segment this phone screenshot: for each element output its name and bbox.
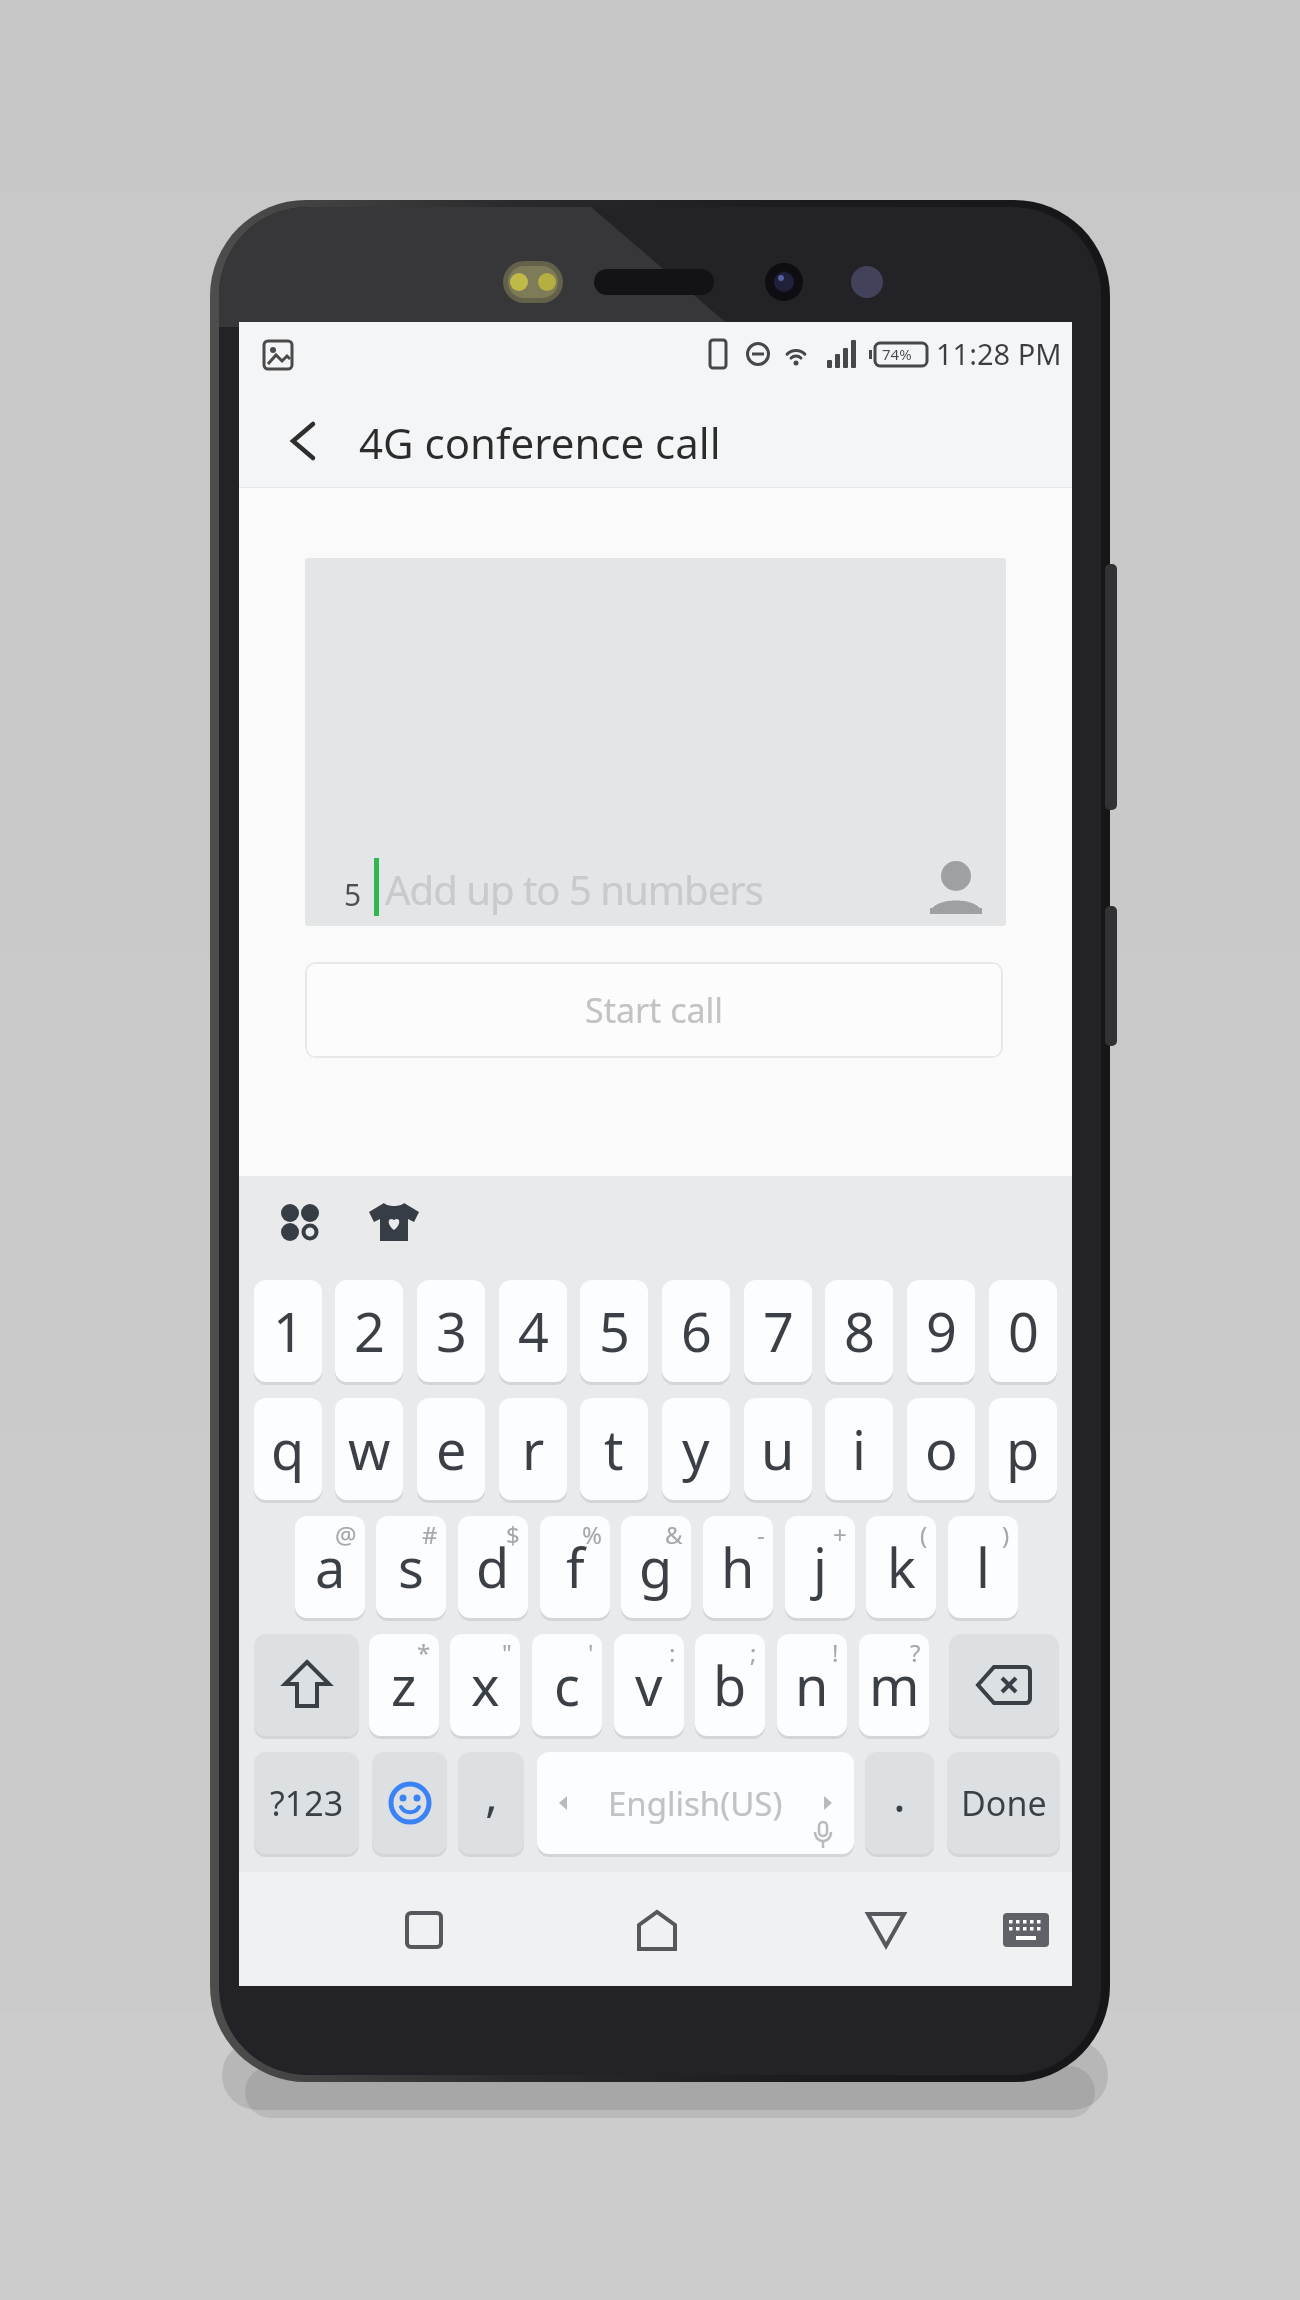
button[interactable]: ?123 <box>254 1752 359 1854</box>
staticText: q <box>271 1412 305 1486</box>
staticText: 4 <box>518 1294 549 1368</box>
staticText: n <box>795 1648 829 1722</box>
button[interactable]: 7 <box>744 1280 812 1382</box>
staticText: 8 <box>844 1294 875 1368</box>
button[interactable]: g <box>621 1516 691 1618</box>
button[interactable]: r <box>499 1398 567 1500</box>
button[interactable] <box>269 1198 339 1246</box>
button[interactable] <box>597 1900 717 1960</box>
button[interactable]: c <box>532 1634 602 1736</box>
staticText: i <box>852 1412 866 1486</box>
staticText: 1 <box>273 1294 304 1368</box>
button[interactable]: y <box>662 1398 730 1500</box>
button[interactable]: q <box>254 1398 322 1500</box>
button[interactable]: 4G conference call <box>279 408 1039 472</box>
button[interactable]: m <box>859 1634 929 1736</box>
staticText: 5 <box>344 874 362 915</box>
button[interactable]: w <box>335 1398 403 1500</box>
staticText: j <box>813 1530 827 1604</box>
staticText: - <box>757 1518 765 1551</box>
staticText: Start call <box>585 987 724 1033</box>
staticText: a <box>315 1530 346 1604</box>
staticText: h <box>721 1530 755 1604</box>
staticText: @ <box>335 1518 357 1551</box>
staticText: # <box>422 1518 438 1551</box>
staticText: s <box>398 1530 424 1604</box>
staticText: p <box>1006 1412 1040 1486</box>
staticText: g <box>639 1530 673 1604</box>
button[interactable]: b <box>695 1634 765 1736</box>
button[interactable]: k <box>866 1516 936 1618</box>
button[interactable]: 6 <box>662 1280 730 1382</box>
button[interactable] <box>826 1900 946 1960</box>
button[interactable]: t <box>580 1398 648 1500</box>
staticText: x <box>471 1648 500 1722</box>
staticText: ( <box>920 1518 928 1551</box>
staticText: y <box>682 1412 710 1486</box>
button[interactable]: n <box>777 1634 847 1736</box>
staticText: b <box>713 1648 747 1722</box>
button[interactable] <box>372 1752 447 1854</box>
button[interactable]: x <box>450 1634 520 1736</box>
button[interactable]: l <box>948 1516 1018 1618</box>
button[interactable]: 3 <box>417 1280 485 1382</box>
button[interactable]: a <box>295 1516 365 1618</box>
staticText: : <box>669 1636 676 1669</box>
staticText: 3 <box>436 1294 467 1368</box>
button[interactable]: z <box>369 1634 439 1736</box>
button[interactable]: 1 <box>254 1280 322 1382</box>
staticText: * <box>417 1636 431 1669</box>
button[interactable]: Done <box>947 1752 1060 1854</box>
staticText: ?123 <box>270 1780 344 1826</box>
staticText: Done <box>961 1780 1047 1826</box>
button[interactable] <box>364 1900 484 1960</box>
staticText: ; <box>750 1636 757 1669</box>
button[interactable]: e <box>417 1398 485 1500</box>
button[interactable]: o <box>907 1398 975 1500</box>
button[interactable]: u <box>744 1398 812 1500</box>
staticText: 4G conference call <box>359 414 721 471</box>
button[interactable]: p <box>989 1398 1057 1500</box>
staticText: c <box>554 1648 580 1722</box>
staticText: 9 <box>926 1294 957 1368</box>
staticText: t <box>604 1412 624 1486</box>
button[interactable]: Start call <box>305 962 1003 1058</box>
button[interactable]: v <box>614 1634 684 1736</box>
staticText: + <box>833 1518 847 1551</box>
button[interactable]: , <box>458 1752 524 1854</box>
button[interactable]: s <box>376 1516 446 1618</box>
button[interactable] <box>359 1198 429 1246</box>
staticText: k <box>887 1530 916 1604</box>
button[interactable]: 2 <box>335 1280 403 1382</box>
button[interactable] <box>254 1634 359 1736</box>
staticText: , <box>485 1761 498 1826</box>
staticText: w <box>348 1412 391 1486</box>
staticText: d <box>476 1530 510 1604</box>
staticText: ) <box>1002 1518 1010 1551</box>
button[interactable]: j <box>785 1516 855 1618</box>
staticText: & <box>665 1518 683 1551</box>
button[interactable]: English(US) <box>537 1752 854 1854</box>
button[interactable] <box>949 1634 1059 1736</box>
button[interactable] <box>976 1902 1076 1958</box>
button[interactable]: h <box>703 1516 773 1618</box>
staticText: o <box>925 1412 958 1486</box>
button[interactable]: 5 <box>305 558 1006 926</box>
staticText: 74% <box>882 344 912 364</box>
button[interactable]: 8 <box>825 1280 893 1382</box>
button[interactable]: f <box>540 1516 610 1618</box>
button[interactable]: 4 <box>499 1280 567 1382</box>
staticText: 7 <box>763 1294 794 1368</box>
button[interactable]: i <box>825 1398 893 1500</box>
button[interactable]: . <box>865 1752 934 1854</box>
staticText: " <box>502 1636 512 1669</box>
staticText: English(US) <box>608 1781 783 1826</box>
staticText: 2 <box>354 1294 385 1368</box>
staticText: v <box>635 1648 663 1722</box>
button[interactable]: 0 <box>989 1280 1057 1382</box>
staticText: ? <box>910 1636 921 1669</box>
button[interactable]: 5 <box>580 1280 648 1382</box>
button[interactable]: 9 <box>907 1280 975 1382</box>
staticText: z <box>391 1648 417 1722</box>
button[interactable]: d <box>458 1516 528 1618</box>
